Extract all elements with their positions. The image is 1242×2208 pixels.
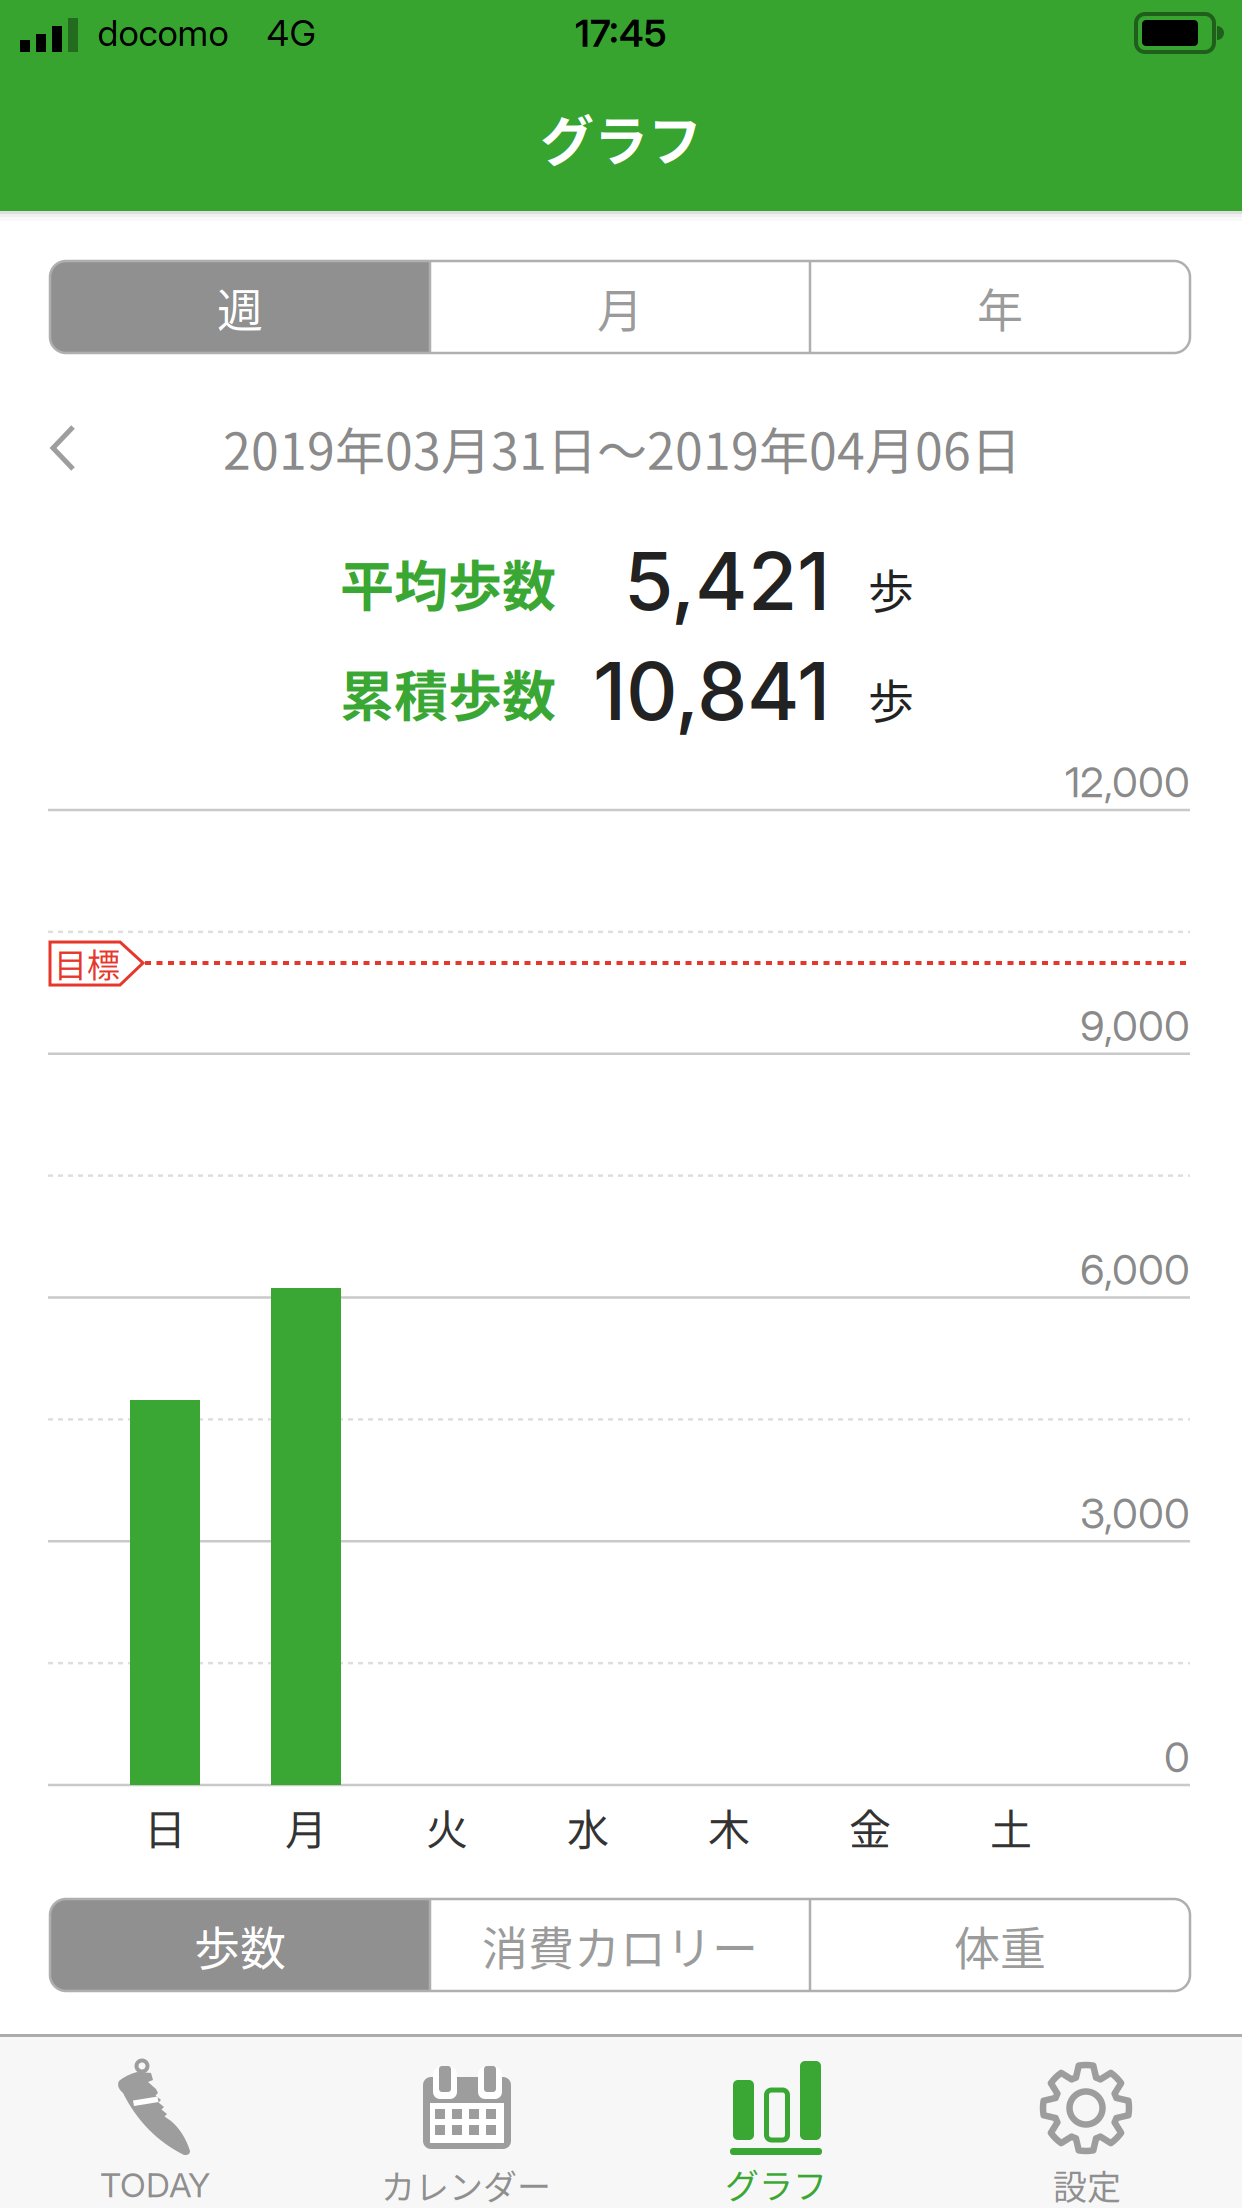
staticText: TODAY <box>100 2164 210 2205</box>
button[interactable]: 歩数 <box>50 1899 430 1991</box>
staticText: 歩 <box>868 665 914 731</box>
staticText: 月 <box>285 1797 327 1857</box>
button[interactable]: グラフ <box>626 2037 926 2208</box>
button[interactable]: TODAY <box>5 2037 305 2208</box>
staticText: 目標 <box>54 939 120 987</box>
staticText: 月 <box>597 274 643 340</box>
staticText: 平均歩数 <box>340 544 556 622</box>
button[interactable]: 週 <box>50 261 430 353</box>
staticText: 木 <box>708 1797 750 1857</box>
staticText: カレンダー <box>381 2160 551 2208</box>
staticText: 5,421 <box>624 533 830 629</box>
staticText: グラフ <box>725 2159 827 2208</box>
button[interactable]: 体重 <box>810 1899 1190 1991</box>
staticText: 体重 <box>954 1912 1046 1978</box>
staticText: 火 <box>426 1797 468 1857</box>
staticText: 年 <box>977 274 1023 340</box>
staticText: 水 <box>567 1797 609 1857</box>
button[interactable]: カレンダー <box>316 2037 616 2208</box>
button[interactable]: 消費カロリー <box>430 1899 810 1991</box>
staticText: 歩 <box>868 555 914 621</box>
staticText: 累積歩数 <box>340 654 556 732</box>
staticText: 10,841 <box>593 643 830 739</box>
staticText: 日 <box>144 1797 186 1857</box>
staticText: 歩数 <box>194 1912 286 1978</box>
staticText: 9,000 <box>1080 1000 1190 1051</box>
staticText: 土 <box>990 1797 1032 1857</box>
staticText: 17:45 <box>575 10 667 56</box>
staticText: docomo <box>97 11 228 55</box>
button[interactable]: 月 <box>430 261 810 353</box>
staticText: 4G <box>266 11 315 55</box>
button[interactable]: 設定 <box>937 2037 1237 2208</box>
staticText: 2019年03月31日〜2019年04月06日 <box>223 412 1021 484</box>
staticText: 週 <box>217 274 263 340</box>
staticText: 6,000 <box>1080 1244 1190 1295</box>
staticText: 12,000 <box>1065 757 1190 807</box>
staticText: 金 <box>849 1797 891 1857</box>
button[interactable] <box>51 425 77 471</box>
staticText: 消費カロリー <box>482 1912 758 1978</box>
staticText: 設定 <box>1053 2160 1121 2208</box>
staticText: 0 <box>1164 1732 1190 1782</box>
staticText: グラフ <box>540 99 702 177</box>
button[interactable]: 年 <box>810 261 1190 353</box>
staticText: 3,000 <box>1080 1488 1190 1539</box>
